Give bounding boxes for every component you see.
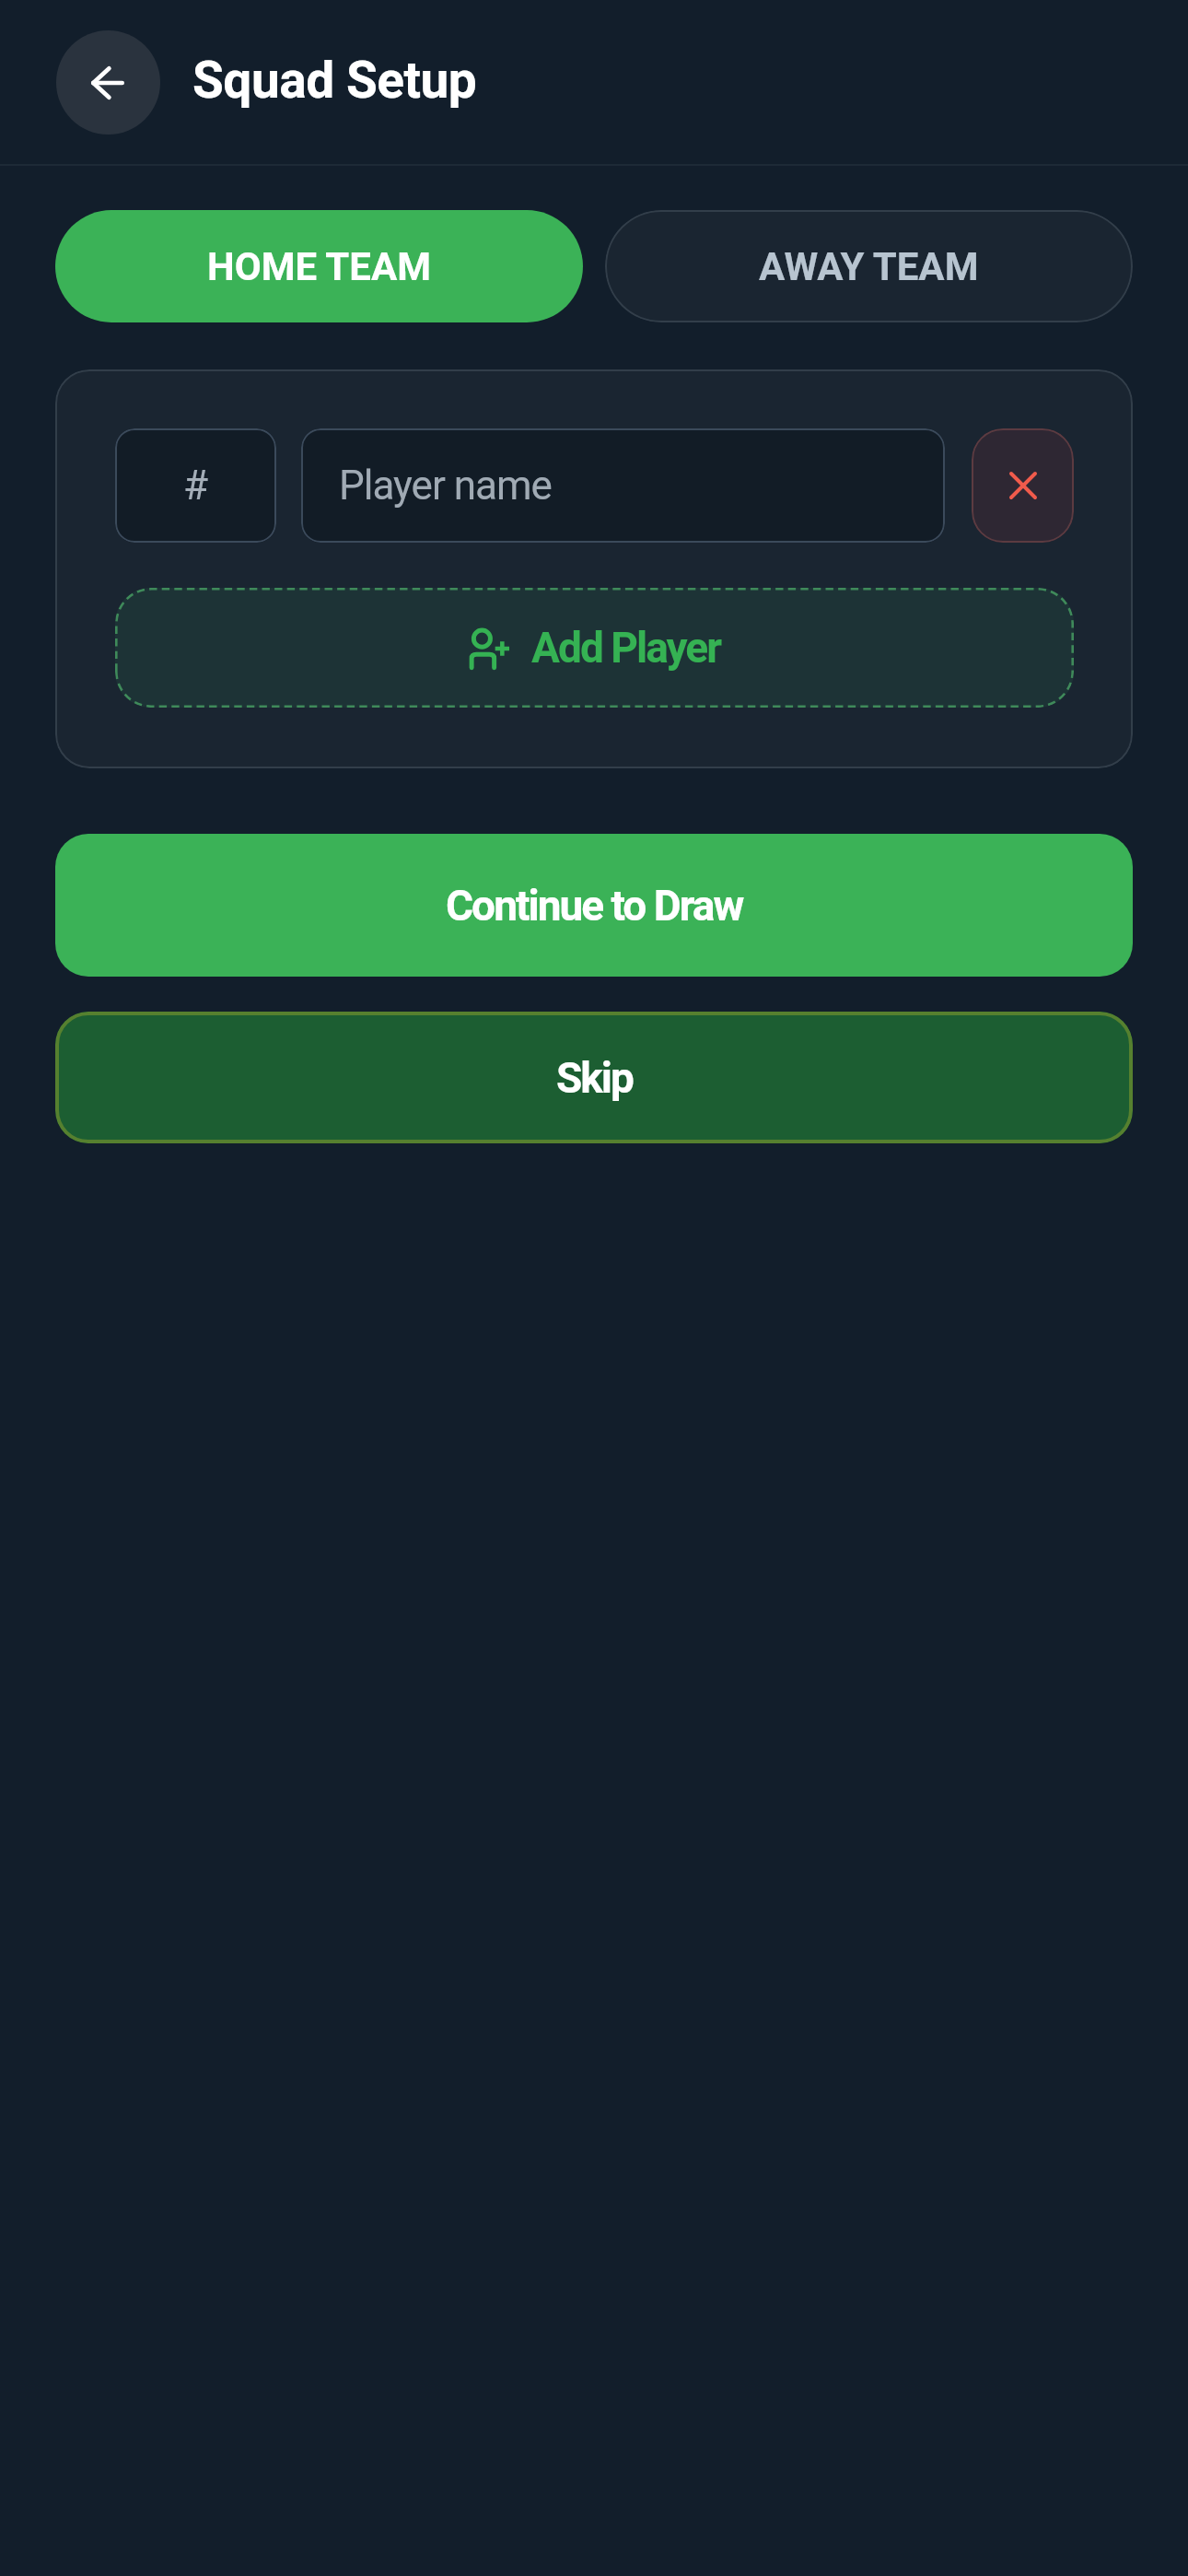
button[interactable]: Back bbox=[56, 30, 160, 135]
button[interactable]: Add Player bbox=[115, 588, 1074, 708]
button[interactable]: HOME TEAM bbox=[55, 210, 583, 322]
button[interactable]: Player name bbox=[301, 428, 945, 543]
staticText: Skip bbox=[556, 1053, 633, 1103]
staticText: Player name bbox=[339, 462, 552, 509]
staticText: HOME TEAM bbox=[207, 244, 432, 289]
staticText: Squad Setup bbox=[192, 51, 477, 110]
staticText: Continue to Draw bbox=[446, 881, 743, 931]
button[interactable]: # bbox=[115, 428, 276, 543]
button[interactable]: AWAY TEAM bbox=[605, 210, 1133, 322]
staticText: # bbox=[183, 462, 209, 509]
button[interactable]: Skip bbox=[55, 1012, 1133, 1143]
button[interactable]: Remove player bbox=[972, 428, 1074, 543]
staticText: AWAY TEAM bbox=[759, 244, 979, 289]
staticText: Add Player bbox=[531, 623, 721, 673]
button[interactable]: Continue to Draw bbox=[55, 834, 1133, 977]
